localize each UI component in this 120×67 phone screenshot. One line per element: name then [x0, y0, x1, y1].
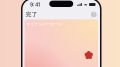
staticText: 完了	[25, 11, 37, 18]
staticText: マイナンバーカード	[26, 21, 62, 27]
staticText: 9:41	[30, 1, 40, 8]
button[interactable]: 完了	[22, 10, 40, 19]
staticText: ?	[93, 12, 95, 17]
button[interactable]: ヘルプ	[90, 10, 98, 18]
